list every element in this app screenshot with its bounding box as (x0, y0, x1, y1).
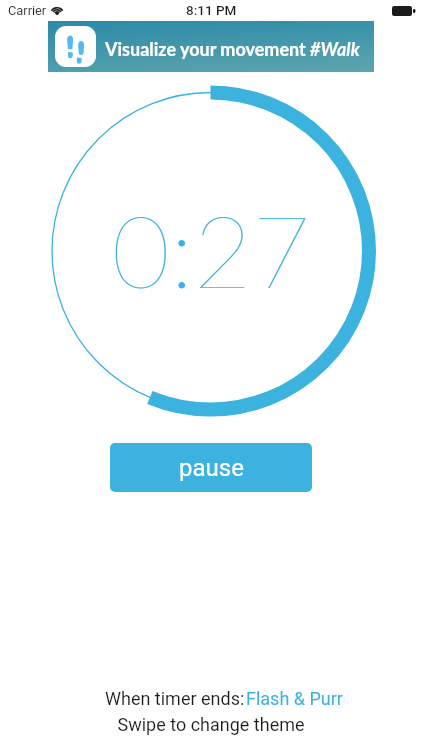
staticText: When timer ends: (105, 688, 245, 709)
button[interactable]: Flash & Purr (246, 688, 343, 709)
button[interactable]: pause (110, 443, 312, 492)
button[interactable]: Visualize your movement #Walk (48, 21, 374, 72)
staticText: Visualize your movement #Walk (105, 38, 360, 60)
staticText: pause (179, 454, 244, 482)
staticText: Swipe to change theme (0, 714, 422, 735)
staticText: Carrier (8, 3, 47, 18)
other: Battery full (392, 6, 416, 16)
staticText: 8:11 PM (186, 2, 237, 18)
other: Wi-Fi signal (51, 5, 63, 15)
staticText: 0:27 (0, 188, 422, 309)
